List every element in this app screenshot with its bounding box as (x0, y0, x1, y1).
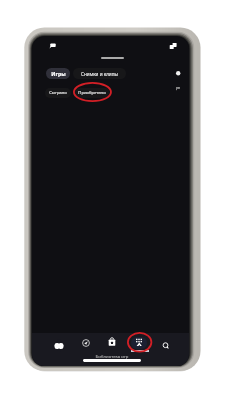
button[interactable]: Search (153, 335, 179, 359)
staticText: Сыграно (49, 90, 67, 96)
staticText: Снимки и клипы (81, 71, 118, 77)
staticText: Игры (51, 70, 66, 77)
button[interactable]: Explore (73, 332, 99, 356)
button[interactable]: Приобретено (73, 88, 110, 98)
staticText: Библиотека игр (92, 353, 132, 359)
button[interactable]: Account (176, 71, 180, 75)
button[interactable]: Сыграно (45, 88, 71, 98)
other: Notification (48, 42, 56, 50)
button[interactable]: Filter (176, 87, 180, 90)
button[interactable]: Home (46, 335, 72, 359)
staticText: Приобретено (78, 90, 106, 96)
button[interactable]: Снимки и клипы (73, 68, 126, 79)
button[interactable]: Library (126, 331, 152, 355)
button[interactable]: Игры (46, 68, 70, 79)
button[interactable]: Shop (99, 331, 125, 355)
